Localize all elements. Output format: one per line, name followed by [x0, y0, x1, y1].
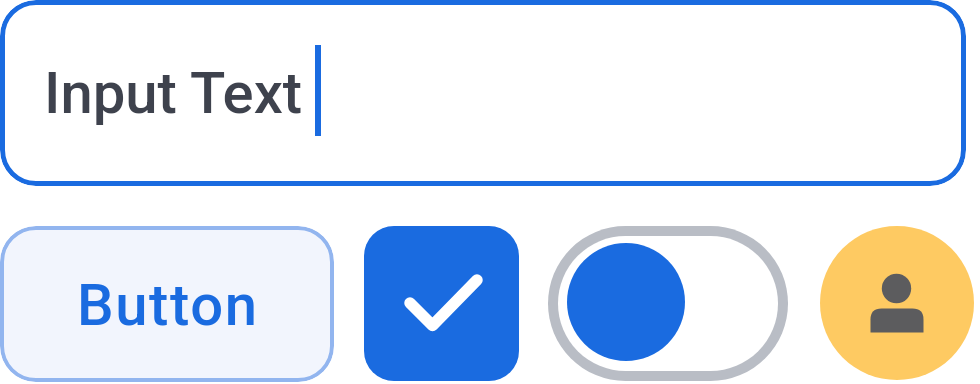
button[interactable]: Input Text — [0, 0, 966, 186]
staticText: Button — [77, 271, 259, 339]
staticText: Input Text — [44, 59, 303, 127]
button[interactable]: Checkbox, checked — [364, 226, 519, 381]
button[interactable]: Button — [0, 226, 334, 382]
button[interactable]: Switch — [548, 226, 788, 381]
button[interactable]: Account — [820, 226, 974, 380]
